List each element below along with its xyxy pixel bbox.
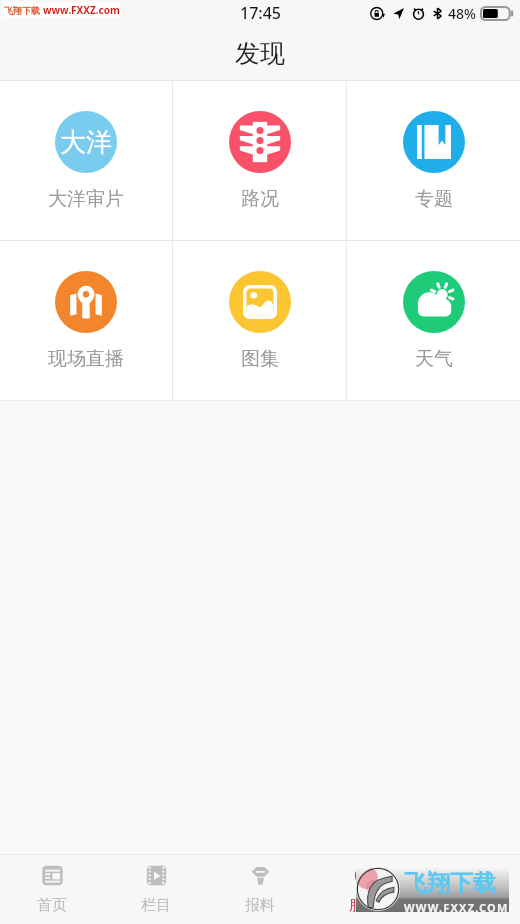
staticText: 首页 [37, 896, 67, 915]
staticText: 飞翔下载 [404, 869, 496, 898]
staticText: 大洋审片 [48, 187, 124, 211]
button[interactable]: 专题 [347, 81, 520, 240]
staticText: 天气 [415, 347, 453, 371]
staticText: 报料 [245, 896, 275, 915]
button[interactable]: 首页 [0, 855, 104, 924]
staticText: 栏目 [141, 896, 171, 915]
staticText: 我的 [453, 896, 483, 915]
button[interactable]: 现场直播 [0, 241, 172, 400]
button[interactable]: 路况 [173, 81, 346, 240]
staticText: 现场直播 [48, 347, 124, 371]
staticText: WWW.FXXZ.COM [404, 900, 509, 915]
staticText: 发现 [235, 38, 285, 69]
button[interactable]: 天气 [347, 241, 520, 400]
button[interactable]: 大洋 [0, 81, 172, 240]
button[interactable]: 报料 [208, 855, 312, 924]
staticText: 大洋 [60, 126, 112, 159]
staticText: 17:45 [240, 2, 281, 24]
staticText: www.FXXZ.com [43, 3, 120, 17]
staticText: 专题 [415, 187, 453, 211]
button[interactable]: 服务 [312, 855, 416, 924]
staticText: 路况 [241, 187, 279, 211]
staticText: 飞翔下载 [4, 5, 40, 16]
staticText: 图集 [241, 347, 279, 371]
staticText: 服务 [349, 896, 379, 915]
button[interactable]: 我的 [416, 855, 520, 924]
button[interactable]: 图集 [173, 241, 346, 400]
button[interactable]: 栏目 [104, 855, 208, 924]
staticText: 48% [448, 4, 476, 23]
